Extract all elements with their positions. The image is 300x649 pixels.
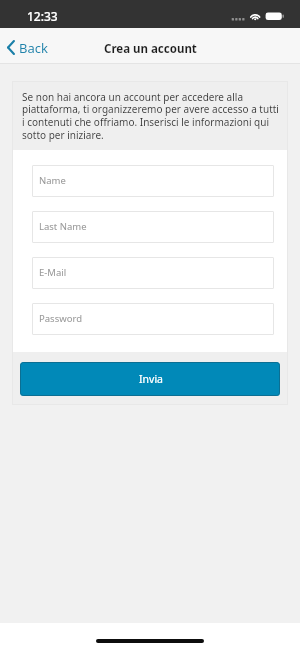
button[interactable]: E-Mail	[32, 257, 274, 289]
staticText: Se non hai ancora un account per acceder…	[22, 90, 279, 142]
staticText: 12:33	[27, 8, 58, 24]
button[interactable]: Name	[32, 165, 274, 197]
staticText: Password	[39, 312, 82, 325]
staticText: Crea un account	[104, 41, 197, 57]
button[interactable]: Invia	[20, 362, 280, 396]
button[interactable]: Password	[32, 303, 274, 335]
button[interactable]: Back	[0, 28, 58, 64]
staticText: Name	[39, 174, 66, 187]
staticText: E-Mail	[39, 266, 67, 279]
staticText: Last Name	[39, 220, 87, 233]
button[interactable]: Last Name	[32, 211, 274, 243]
staticText: Invia	[139, 372, 163, 386]
staticText: Back	[19, 39, 48, 57]
